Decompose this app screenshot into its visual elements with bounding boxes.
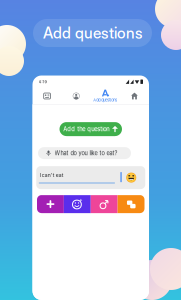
button[interactable]: Home — [120, 85, 149, 107]
button[interactable]: Add questions — [91, 85, 120, 107]
button[interactable]: Gender — [91, 195, 118, 213]
staticText: Add the question — [63, 126, 109, 132]
staticText: Add questions — [43, 24, 142, 42]
button[interactable]: Add — [37, 195, 64, 213]
staticText: Add questions — [93, 98, 117, 102]
button[interactable]: Chats — [118, 195, 144, 213]
staticText: What do you like to eat? — [54, 150, 117, 156]
button[interactable]: Add questions — [33, 19, 152, 47]
button[interactable]: Account — [62, 85, 91, 107]
staticText: I can't eat — [40, 172, 64, 178]
button[interactable]: Contacts — [32, 85, 62, 107]
staticText: 4:19 — [38, 79, 46, 84]
button[interactable]: Add the question — [59, 122, 122, 136]
button[interactable]: Stickers — [64, 195, 91, 213]
